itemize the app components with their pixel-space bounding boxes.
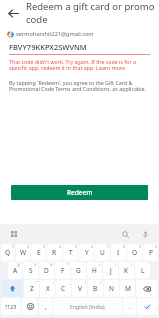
- button[interactable]: Search: [118, 227, 132, 241]
- staticText: G: [76, 266, 81, 275]
- button[interactable]: U: [95, 244, 110, 261]
- staticText: 8: [123, 244, 125, 249]
- staticText: X: [46, 284, 50, 293]
- staticText: 6: [91, 244, 93, 249]
- staticText: P: [149, 248, 153, 257]
- staticText: 7: [107, 244, 109, 249]
- staticText: Z: [30, 284, 34, 293]
- button[interactable]: Back: [0, 0, 26, 26]
- staticText: *: [67, 262, 69, 267]
- staticText: By tapping 'Redeem', you agree to the Gi…: [9, 79, 150, 93]
- staticText: ': [148, 262, 149, 267]
- button[interactable]: M: [120, 280, 135, 297]
- button[interactable]: B: [88, 280, 103, 297]
- staticText: That code didn't work. Try again. If the…: [9, 58, 150, 72]
- staticText: 9: [139, 244, 141, 249]
- button[interactable]: R: [47, 244, 62, 261]
- staticText: -: [83, 262, 85, 267]
- staticText: vermoharshit221@gmail.com: [16, 30, 94, 38]
- button[interactable]: ?123: [1, 298, 21, 315]
- button[interactable]: L: [135, 262, 150, 279]
- staticText: J: [110, 266, 112, 275]
- button[interactable]: H: [87, 262, 102, 279]
- button[interactable]: N: [104, 280, 119, 297]
- button[interactable]: S: [23, 262, 38, 279]
- staticText: F: [61, 266, 65, 275]
- button[interactable]: C: [56, 280, 71, 297]
- staticText: 0: [155, 244, 157, 249]
- staticText: Q: [5, 248, 11, 257]
- staticText: &: [50, 262, 53, 267]
- staticText: ): [131, 262, 133, 267]
- staticText: Redeem a gift card or promo code: [26, 0, 159, 26]
- staticText: A: [13, 266, 18, 275]
- staticText: K: [124, 266, 129, 275]
- button[interactable]: ,: [39, 298, 52, 315]
- button[interactable]: J: [103, 262, 118, 279]
- staticText: S: [29, 266, 33, 275]
- staticText: B: [93, 284, 98, 293]
- staticText: 5: [75, 244, 77, 249]
- button[interactable]: Voice input: [138, 227, 152, 241]
- button[interactable]: English (India): [53, 298, 122, 315]
- button[interactable]: Redeem: [11, 185, 148, 200]
- button[interactable]: G: [71, 262, 86, 279]
- staticText: 1: [12, 244, 14, 249]
- staticText: E: [37, 248, 41, 257]
- button[interactable]: O: [127, 244, 142, 261]
- staticText: W: [20, 248, 27, 257]
- staticText: ;: [69, 280, 70, 285]
- button[interactable]: W: [16, 244, 30, 261]
- staticText: .: [129, 302, 131, 311]
- staticText: M: [125, 284, 131, 293]
- staticText: R: [52, 248, 57, 257]
- staticText: !: [85, 280, 86, 285]
- button[interactable]: Toolbar: [7, 227, 21, 241]
- staticText: 4: [59, 244, 61, 249]
- button[interactable]: D: [39, 262, 54, 279]
- staticText: U: [100, 248, 105, 257]
- button[interactable]: .: [123, 298, 136, 315]
- button[interactable]: Shift: [1, 280, 23, 297]
- button[interactable]: X: [40, 280, 55, 297]
- staticText: O: [132, 248, 138, 257]
- staticText: @: [17, 262, 21, 267]
- staticText: (: [115, 262, 117, 267]
- button[interactable]: Enter: [137, 298, 158, 315]
- staticText: Redeem: [67, 188, 93, 197]
- button[interactable]: Q: [1, 244, 15, 261]
- button[interactable]: Y: [79, 244, 94, 261]
- button[interactable]: V: [72, 280, 87, 297]
- staticText: FBVY79KKPX2SWVNM: [9, 42, 87, 52]
- staticText: C: [61, 284, 66, 293]
- staticText: ": [36, 280, 38, 285]
- staticText: Y: [85, 248, 89, 257]
- staticText: N: [109, 284, 114, 293]
- button[interactable]: E: [31, 244, 46, 261]
- button[interactable]: Backspace: [136, 280, 158, 297]
- staticText: ?: [100, 280, 102, 285]
- button[interactable]: I: [111, 244, 126, 261]
- button[interactable]: Emoji: [22, 298, 38, 315]
- staticText: 2: [27, 244, 29, 249]
- button[interactable]: A: [8, 262, 22, 279]
- staticText: L: [141, 266, 145, 275]
- staticText: #: [34, 262, 37, 267]
- staticText: :: [53, 280, 54, 285]
- button[interactable]: T: [63, 244, 78, 261]
- staticText: T: [69, 248, 73, 257]
- button[interactable]: K: [119, 262, 134, 279]
- staticText: V: [78, 284, 82, 293]
- staticText: I: [117, 248, 120, 257]
- staticText: D: [44, 266, 49, 275]
- button[interactable]: P: [143, 244, 158, 261]
- staticText: +: [99, 262, 101, 267]
- staticText: ?123: [5, 303, 17, 310]
- button[interactable]: Z: [24, 280, 39, 297]
- staticText: English (India): [70, 303, 105, 310]
- button[interactable]: F: [55, 262, 70, 279]
- staticText: 3: [43, 244, 45, 249]
- staticText: ,: [45, 302, 47, 311]
- staticText: H: [92, 266, 97, 275]
